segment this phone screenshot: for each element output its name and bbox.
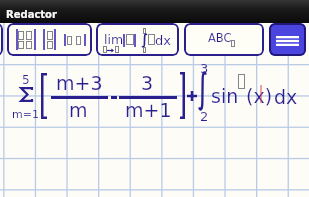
staticText: Redactor: [6, 9, 57, 21]
button[interactable]: Menu: [269, 23, 306, 56]
staticText: 2: [200, 109, 209, 124]
button[interactable]: Letters: [184, 23, 264, 56]
button[interactable]: Matrix templates: [7, 23, 92, 56]
staticText: dx: [155, 33, 171, 48]
staticText: m=1: [12, 108, 39, 121]
staticText: (x): [246, 85, 273, 107]
staticText: 5: [22, 73, 30, 87]
staticText: dx: [274, 86, 298, 108]
staticText: 3: [200, 61, 209, 76]
staticText: lim: [104, 32, 124, 47]
staticText: m: [69, 99, 88, 121]
button[interactable]: [0, 23, 3, 56]
staticText: ABC: [208, 31, 232, 44]
staticText: 3: [141, 72, 154, 94]
staticText: sin: [211, 85, 239, 107]
staticText: m+3: [56, 72, 103, 94]
staticText: m+1: [125, 99, 172, 121]
button[interactable]: Limit and integral templates: [96, 23, 179, 56]
